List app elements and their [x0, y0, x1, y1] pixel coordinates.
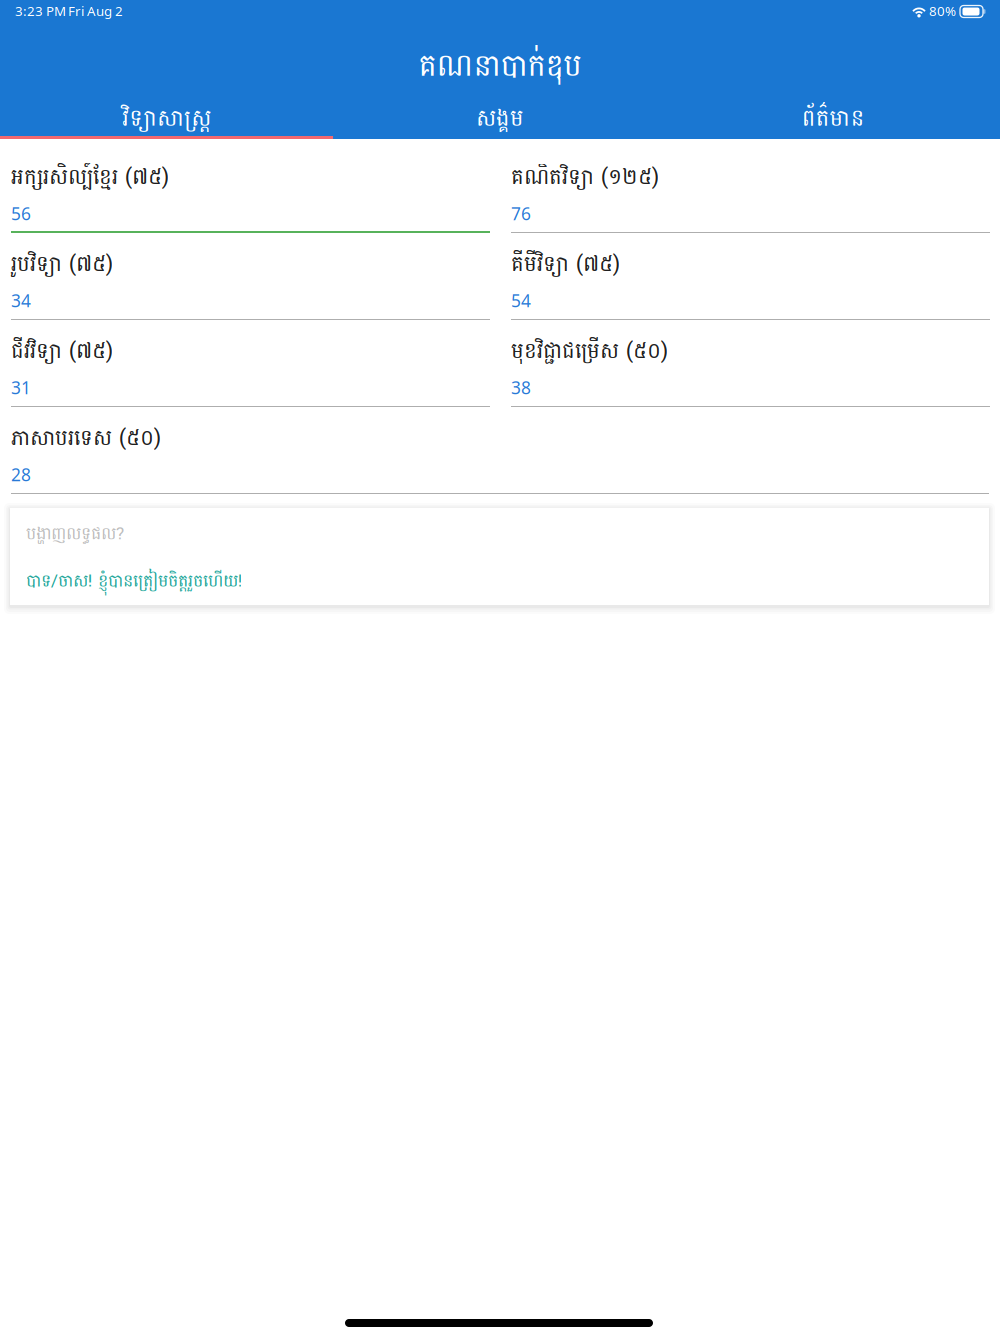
staticText: 31 — [11, 376, 31, 399]
button[interactable]: ភាសាបរទេស (៥០) — [11, 407, 490, 493]
button[interactable]: វិទ្យាសាស្ត្រ — [0, 96, 333, 139]
staticText: 56 — [11, 202, 31, 225]
staticText: Fri Aug 2 — [68, 2, 123, 20]
staticText: បាទ/ចាស! ខ្ញុំបានត្រៀមចិត្តរួចហើយ! — [26, 565, 242, 597]
staticText: រូបវិទ្យា (៧៥) — [11, 245, 113, 283]
button[interactable]: អក្សរសិល្ប៍ខ្មែរ (៧៥) — [11, 146, 490, 233]
staticText: មុខវិជ្ជាជម្រើស (៥០) — [511, 332, 668, 370]
button[interactable]: គណិតវិទ្យា (១២៥) — [511, 146, 990, 233]
staticText: 38 — [511, 376, 531, 399]
button[interactable]: មុខវិជ្ជាជម្រើស (៥០) — [511, 320, 990, 407]
button[interactable]: រូបវិទ្យា (៧៥) — [11, 233, 490, 320]
staticText: ព័ត៌មាន — [802, 98, 865, 139]
button[interactable]: ជីវវិទ្យា (៧៥) — [11, 320, 490, 407]
staticText: គណនាបាក់ឌុប — [418, 38, 581, 94]
staticText: 28 — [11, 463, 31, 486]
staticText: អក្សរសិល្ប៍ខ្មែរ (៧៥) — [11, 158, 169, 196]
staticText: ជីវវិទ្យា (៧៥) — [11, 332, 113, 370]
staticText: 76 — [511, 202, 531, 225]
staticText: 80% — [929, 2, 956, 20]
button[interactable]: បាទ/ចាស! ខ្ញុំបានត្រៀមចិត្តរួចហើយ! — [26, 566, 346, 596]
staticText: សង្គម — [476, 98, 524, 139]
staticText: គណិតវិទ្យា (១២៥) — [511, 158, 659, 196]
button[interactable]: គីមីវិទ្យា (៧៥) — [511, 233, 990, 320]
staticText: បង្ហាញលទ្ធផល? — [26, 518, 124, 549]
staticText: 3:23 PM — [15, 2, 66, 20]
staticText: វិទ្យាសាស្ត្រ — [122, 98, 211, 139]
staticText: ភាសាបរទេស (៥០) — [11, 419, 161, 457]
button[interactable]: សង្គម — [333, 96, 667, 139]
button[interactable]: ព័ត៌មាន — [667, 96, 1000, 139]
staticText: គីមីវិទ្យា (៧៥) — [511, 245, 620, 283]
staticText: 54 — [511, 289, 531, 312]
staticText: 34 — [11, 289, 31, 312]
